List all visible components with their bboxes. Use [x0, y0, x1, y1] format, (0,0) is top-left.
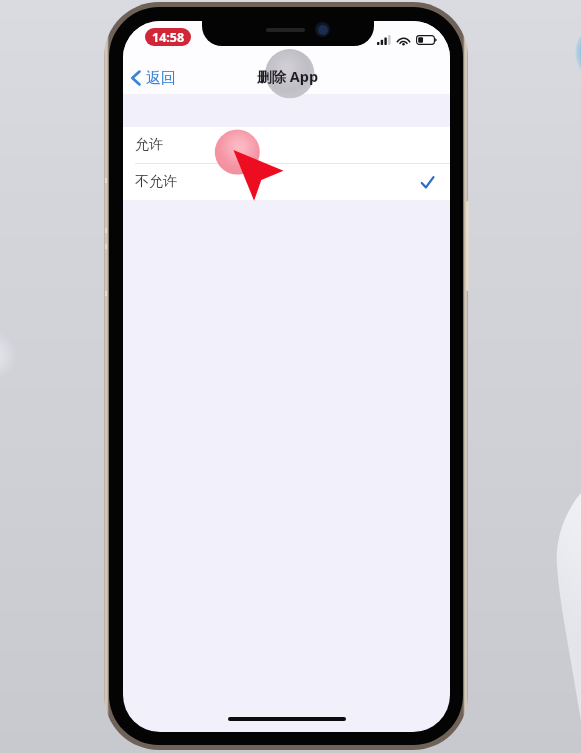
staticText: 允许: [135, 136, 163, 154]
staticText: 删除 App: [257, 66, 319, 86]
button[interactable]: 允许: [123, 127, 450, 163]
button[interactable]: 返回: [128, 64, 176, 92]
other: Selected: [421, 176, 434, 189]
staticText: 返回: [146, 69, 176, 88]
button[interactable]: 不允许: [123, 164, 450, 200]
staticText: 不允许: [135, 173, 177, 191]
staticText: 14:58: [152, 29, 185, 46]
